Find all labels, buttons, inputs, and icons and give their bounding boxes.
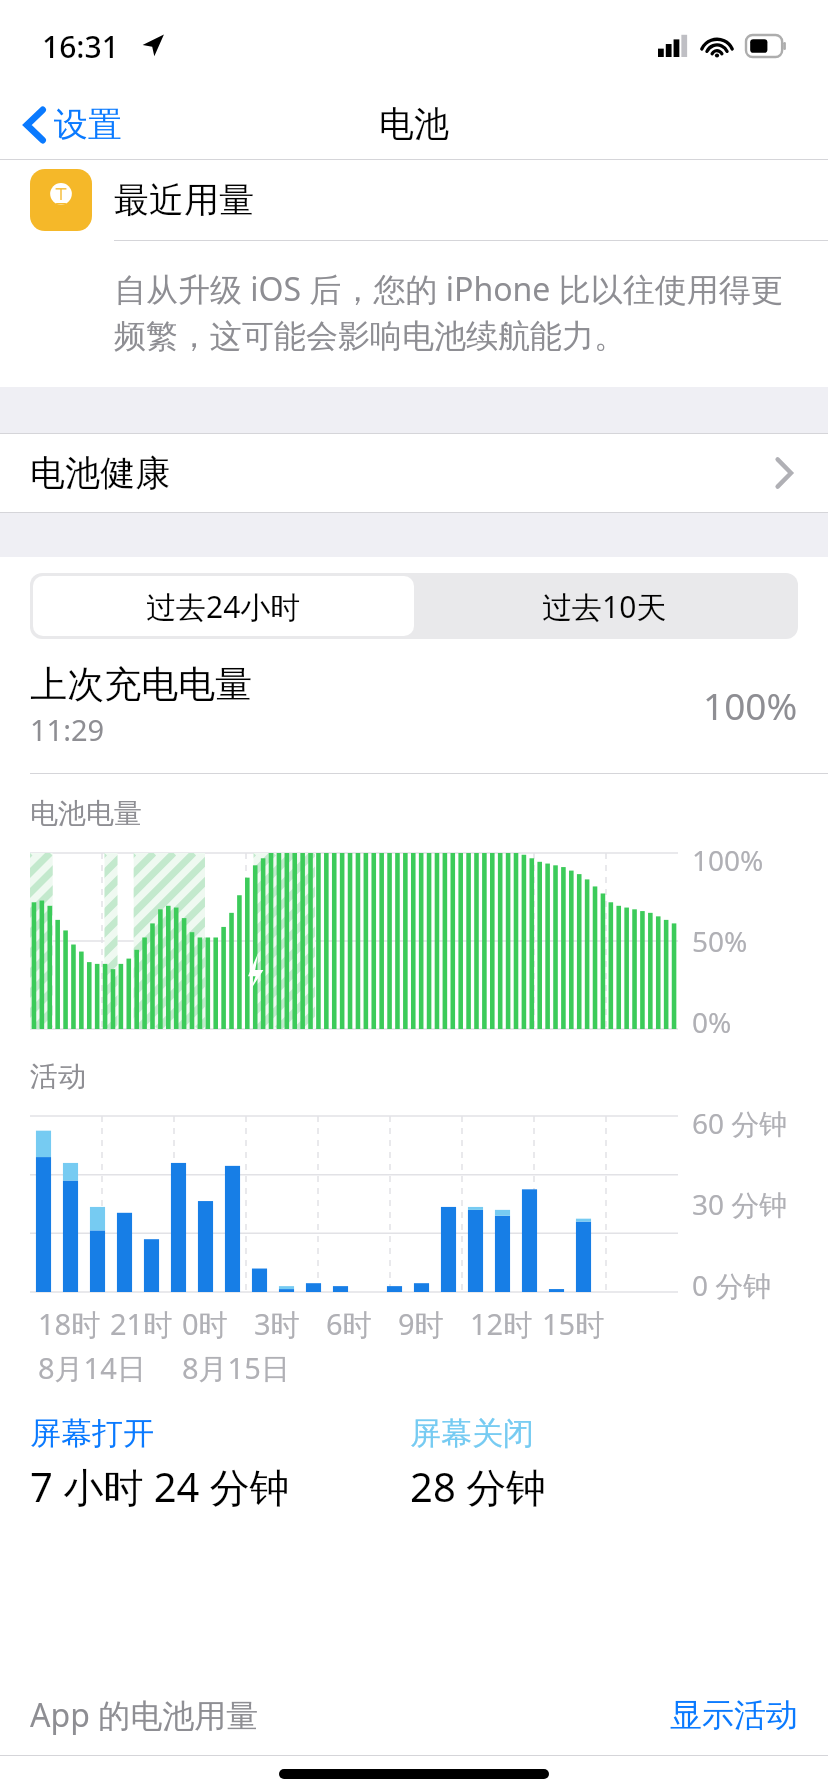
button[interactable]: 显示活动 [670, 1695, 798, 1735]
staticText: 电池电量 [30, 796, 142, 831]
staticText: 过去10天 [542, 586, 667, 627]
staticText: 8月15日 [182, 1348, 290, 1388]
staticText: 11:29 [30, 710, 105, 749]
staticText: 最近用量 [114, 178, 254, 222]
button[interactable]: 过去24小时 [33, 576, 414, 636]
staticText: 电池健康 [30, 451, 170, 495]
staticText: 显示活动 [670, 1695, 798, 1735]
staticText: 0 分钟 [692, 1266, 772, 1304]
button[interactable]: 过去10天 [414, 576, 795, 636]
staticText: 15时 [542, 1304, 605, 1344]
staticText: 3时 [254, 1304, 300, 1344]
staticText: 7 小时 24 分钟 [30, 1459, 290, 1514]
staticText: 屏幕关闭 [410, 1414, 534, 1453]
staticText: 电池 [379, 102, 449, 146]
button[interactable]: 电池健康 [0, 434, 828, 512]
staticText: 8月14日 [38, 1348, 146, 1388]
staticText: 屏幕打开 [30, 1414, 154, 1453]
staticText: 自从升级 iOS 后，您的 iPhone 比以往使用得更频繁，这可能会影响电池续… [114, 267, 794, 357]
staticText: 9时 [398, 1304, 444, 1344]
staticText: 6时 [326, 1304, 372, 1344]
button[interactable]: 最近用量 [0, 160, 828, 240]
staticText: 21时 [110, 1304, 173, 1344]
staticText: 设置 [54, 103, 122, 146]
staticText: 18时 [38, 1304, 101, 1344]
button[interactable]: 设置 [18, 97, 128, 152]
staticText: 100% [692, 841, 764, 879]
staticText: 12时 [470, 1304, 533, 1344]
staticText: 28 分钟 [410, 1459, 547, 1514]
staticText: 100% [703, 680, 798, 730]
staticText: 过去24小时 [146, 586, 301, 627]
staticText: 活动 [30, 1059, 86, 1094]
staticText: 60 分钟 [692, 1104, 788, 1142]
staticText: 0时 [182, 1304, 228, 1344]
staticText: 30 分钟 [692, 1185, 788, 1223]
staticText: 上次充电电量 [30, 661, 252, 708]
staticText: App 的电池用量 [30, 1693, 259, 1737]
staticText: 16:31 [42, 26, 119, 67]
staticText: 0% [692, 1003, 732, 1041]
staticText: 50% [692, 922, 748, 960]
